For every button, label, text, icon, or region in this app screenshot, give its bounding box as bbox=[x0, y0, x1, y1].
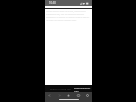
button[interactable]: Back bbox=[46, 92, 53, 98]
button[interactable]: Tabs bbox=[75, 92, 82, 98]
button[interactable]: Home bbox=[65, 92, 72, 98]
staticText: www.example.com bbox=[74, 86, 91, 92]
button[interactable]: More options bbox=[84, 92, 91, 98]
staticText: Search or type URL bbox=[50, 87, 72, 90]
staticText: Lorem ipsum dolor sit amet, consectetur … bbox=[46, 10, 91, 22]
button[interactable]: Address bar bbox=[45, 85, 92, 92]
staticText: 10:30 bbox=[49, 1, 56, 5]
button[interactable]: Forward bbox=[56, 92, 63, 98]
